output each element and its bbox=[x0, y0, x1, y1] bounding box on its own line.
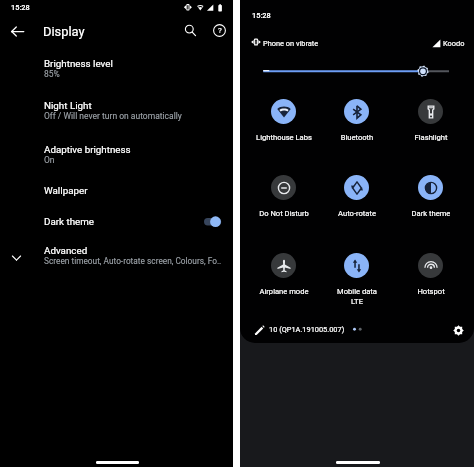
button[interactable]: Hotspot bbox=[398, 251, 464, 307]
staticText: Off / Will never turn on automatically bbox=[44, 111, 182, 121]
button[interactable]: Settings bbox=[449, 321, 467, 339]
button[interactable]: Search bbox=[180, 20, 201, 41]
staticText: Display bbox=[43, 24, 85, 39]
staticText: Auto-rotate bbox=[324, 209, 390, 218]
button[interactable]: Help bbox=[209, 20, 230, 41]
button[interactable]: Auto-rotate bbox=[324, 173, 390, 229]
button[interactable]: Edit tiles bbox=[250, 321, 268, 339]
staticText: Flashlight bbox=[398, 133, 464, 142]
button[interactable]: Advanced bbox=[0, 243, 233, 271]
button[interactable]: Flashlight bbox=[398, 97, 464, 153]
staticText: Bluetooth bbox=[324, 133, 390, 142]
staticText: Dark theme bbox=[44, 216, 95, 227]
staticText: Dark theme bbox=[398, 209, 464, 218]
staticText: 85% bbox=[44, 69, 60, 79]
staticText: Lighthouse Labs bbox=[251, 133, 317, 142]
button[interactable]: Wallpaper bbox=[0, 185, 233, 207]
button[interactable]: Airplane mode bbox=[251, 251, 317, 307]
staticText: Do Not Disturb bbox=[251, 209, 317, 218]
staticText: Phone on vibrate bbox=[263, 39, 319, 48]
button[interactable]: Dark theme bbox=[398, 173, 464, 229]
button[interactable]: Bluetooth bbox=[324, 97, 390, 153]
button[interactable]: Dark theme bbox=[0, 216, 233, 238]
staticText: Screen timeout, Auto-rotate screen, Colo… bbox=[44, 256, 222, 266]
staticText: Airplane mode bbox=[251, 287, 317, 296]
staticText: Adaptive brightness bbox=[44, 144, 131, 155]
staticText: ? bbox=[218, 26, 222, 35]
button[interactable]: Dark theme toggle bbox=[199, 211, 226, 232]
button[interactable]: Night Light bbox=[0, 100, 233, 126]
staticText: Hotspot bbox=[398, 287, 464, 296]
staticText: 10 (QP1A.191005.007) bbox=[269, 325, 345, 334]
button[interactable]: Back bbox=[5, 19, 29, 43]
staticText: LTE bbox=[324, 297, 390, 306]
staticText: Advanced bbox=[44, 245, 88, 256]
staticText: Wallpaper bbox=[44, 185, 88, 196]
staticText: Night Light bbox=[44, 100, 92, 111]
staticText: 15:28 bbox=[11, 3, 30, 12]
button[interactable]: Mobile data bbox=[324, 251, 390, 307]
button[interactable]: Brightness level bbox=[0, 58, 233, 84]
staticText: 15:28 bbox=[252, 11, 271, 20]
staticText: On bbox=[44, 155, 55, 165]
staticText: Brightness level bbox=[44, 58, 113, 69]
staticText: Mobile data bbox=[324, 287, 390, 296]
button[interactable]: Adaptive brightness bbox=[0, 144, 233, 170]
button[interactable]: Lighthouse Labs bbox=[251, 97, 317, 153]
button[interactable]: Do Not Disturb bbox=[251, 173, 317, 229]
staticText: Koodo bbox=[443, 39, 465, 48]
